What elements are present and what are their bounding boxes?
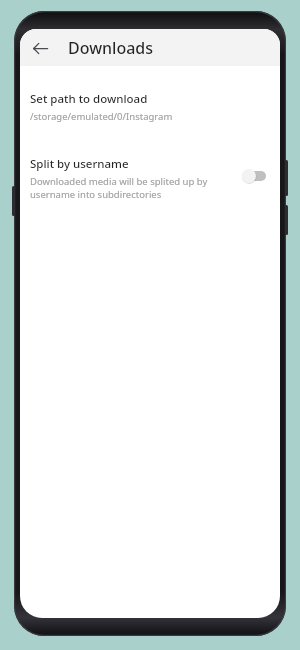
staticText: Downloads	[68, 37, 154, 59]
button[interactable]: Split by username toggle	[242, 166, 270, 186]
staticText: /storage/emulated/0/Instagram	[30, 110, 173, 123]
staticText: Set path to download	[30, 91, 148, 107]
button[interactable]: Set path to download	[20, 89, 280, 129]
button[interactable]: Split by username	[20, 154, 280, 207]
button[interactable]: Back	[24, 32, 56, 64]
staticText: Split by username	[30, 156, 129, 172]
staticText: Downloaded media will be splited up by u…	[30, 175, 208, 201]
